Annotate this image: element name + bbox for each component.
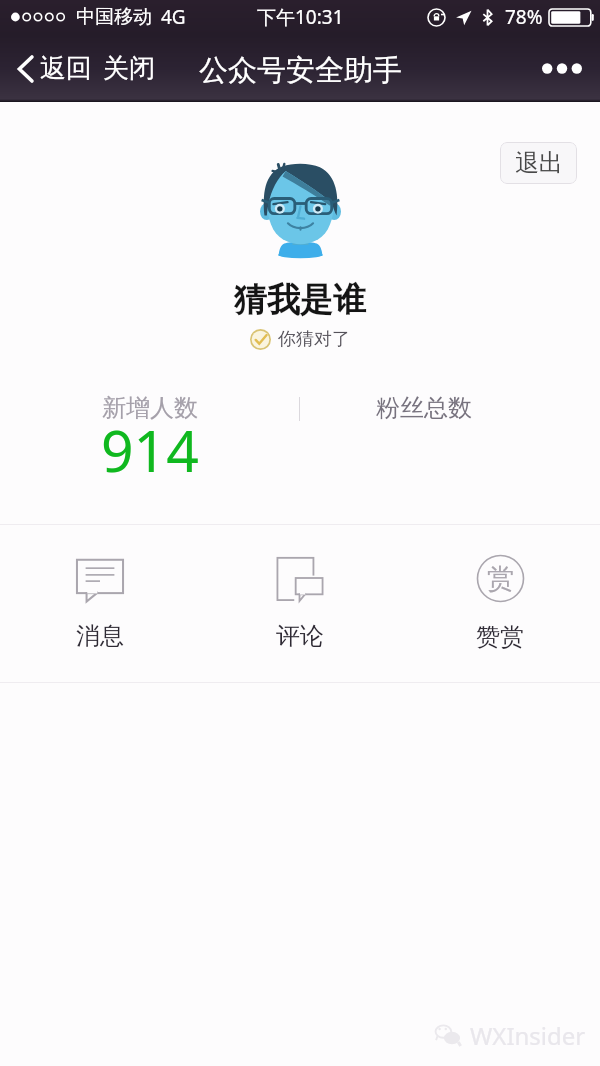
staticText: 4G bbox=[161, 4, 186, 30]
button[interactable]: 返回 bbox=[17, 52, 92, 85]
button[interactable]: 赏 bbox=[400, 525, 600, 682]
staticText: 78% bbox=[505, 4, 543, 30]
staticText: 退出 bbox=[515, 148, 563, 178]
button[interactable]: 消息 bbox=[0, 525, 200, 682]
staticText: 赞赏 bbox=[476, 622, 524, 652]
button[interactable]: 评论 bbox=[200, 525, 400, 682]
button[interactable]: Profile avatar bbox=[260, 164, 341, 256]
staticText: 猜我是谁 bbox=[234, 279, 366, 321]
staticText: 914 bbox=[101, 411, 199, 489]
staticText: 你猜对了 bbox=[278, 328, 350, 351]
button[interactable]: 关闭 bbox=[103, 52, 155, 85]
button[interactable]: 退出 bbox=[500, 142, 577, 184]
staticText: 中国移动 bbox=[76, 5, 152, 29]
staticText: 评论 bbox=[276, 621, 324, 651]
staticText: 下午10:31 bbox=[257, 4, 344, 30]
staticText: 赏 bbox=[487, 562, 514, 596]
staticText: 公众号安全助手 bbox=[199, 52, 402, 89]
staticText: 消息 bbox=[76, 621, 124, 651]
staticText: 返回 bbox=[40, 52, 92, 85]
button[interactable]: More options bbox=[533, 46, 591, 90]
staticText: 粉丝总数 bbox=[376, 393, 472, 423]
staticText: 新增人数 bbox=[102, 393, 198, 423]
staticText: 关闭 bbox=[103, 52, 155, 85]
staticText: WXInsider bbox=[470, 1019, 586, 1052]
